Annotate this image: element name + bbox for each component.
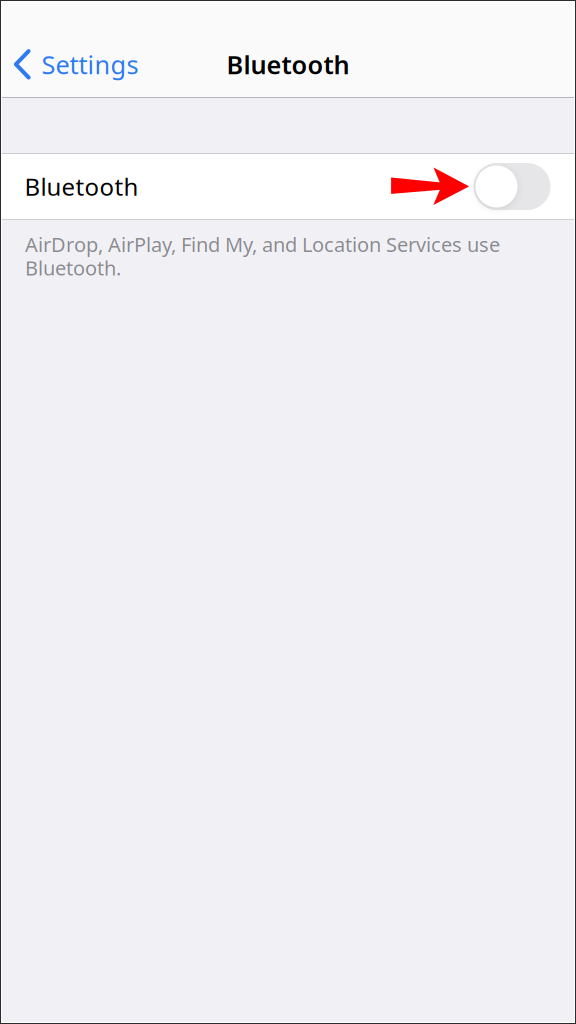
staticText: Settings <box>41 48 138 81</box>
button[interactable]: Bluetooth <box>473 163 550 210</box>
staticText: Bluetooth <box>24 171 138 202</box>
button[interactable]: Settings <box>0 33 148 96</box>
staticText: Bluetooth <box>226 48 349 81</box>
staticText: AirDrop, AirPlay, Find My, and Location … <box>25 231 500 281</box>
